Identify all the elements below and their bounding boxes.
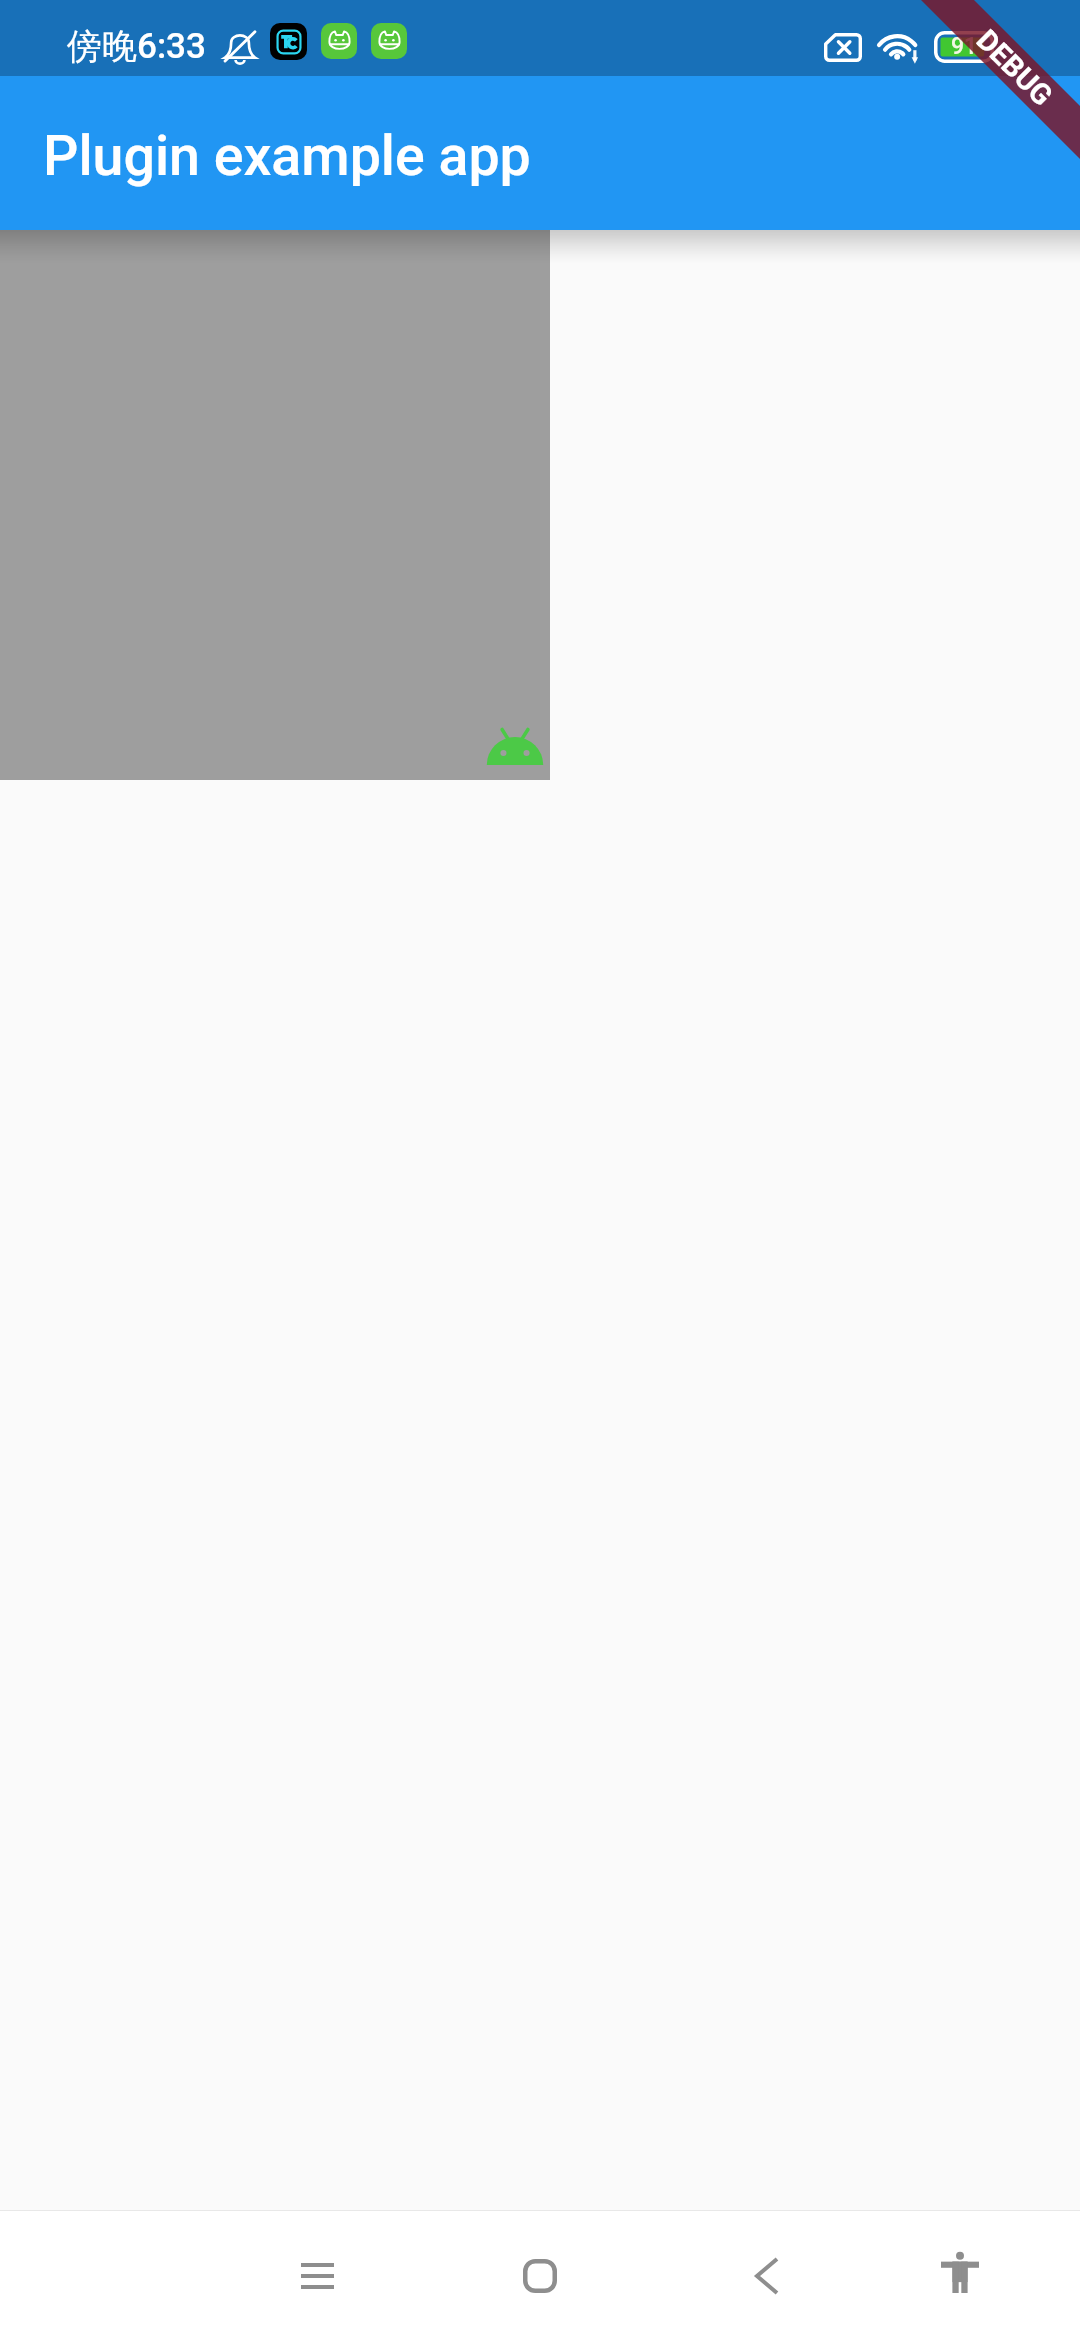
staticText: 傍晚6:33 bbox=[67, 24, 206, 68]
button[interactable]: Back bbox=[712, 2221, 822, 2331]
staticText: DEBUG bbox=[970, 23, 1060, 113]
button[interactable]: Recent apps bbox=[262, 2221, 372, 2331]
button[interactable]: Home bbox=[485, 2221, 595, 2331]
staticText: Plugin example app bbox=[43, 124, 531, 189]
button[interactable]: Accessibility bbox=[905, 2221, 1015, 2331]
staticText: 91 bbox=[951, 33, 978, 60]
